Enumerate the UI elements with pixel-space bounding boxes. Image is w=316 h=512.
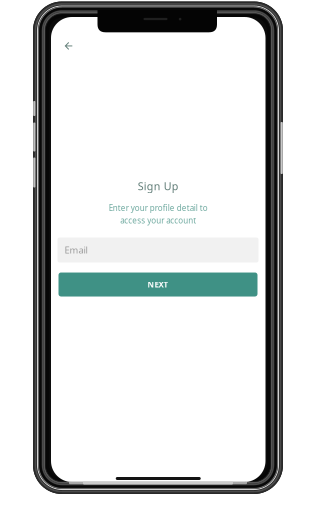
staticText: access your account xyxy=(120,215,196,226)
staticText: Enter your profile detail to xyxy=(109,203,208,213)
staticText: Sign Up xyxy=(138,179,179,193)
staticText: NEXT xyxy=(147,279,168,290)
button[interactable]: Back xyxy=(57,35,79,57)
button[interactable]: NEXT xyxy=(58,272,257,296)
staticText: Email xyxy=(64,244,87,256)
